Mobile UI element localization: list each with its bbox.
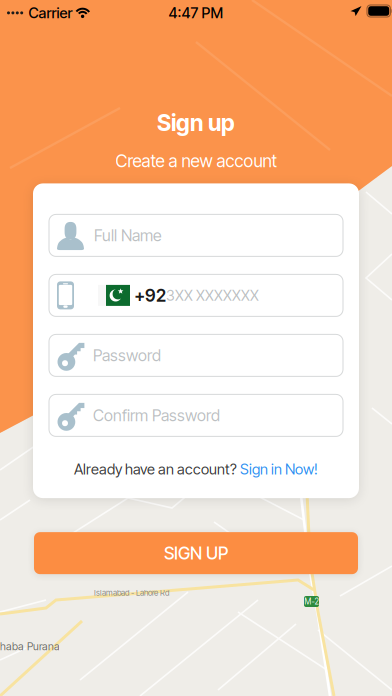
- staticText: 3XX XXXXXXX: [166, 286, 259, 304]
- staticText: Sign up: [157, 109, 235, 136]
- staticText: Create a new account: [115, 150, 276, 171]
- button[interactable]: Sign in Now!: [240, 460, 318, 478]
- staticText: Carrier: [29, 4, 73, 22]
- staticText: 4:47 PM: [168, 4, 223, 22]
- staticText: haba Purana: [0, 640, 60, 653]
- staticText: Confirm Password: [93, 406, 220, 425]
- staticText: Password: [93, 346, 161, 365]
- button[interactable]: Full Name: [49, 214, 343, 256]
- button[interactable]: Password: [49, 334, 343, 376]
- button[interactable]: Confirm Password: [49, 394, 343, 436]
- staticText: Already have an account?: [74, 460, 240, 478]
- staticText: SIGN UP: [164, 543, 228, 564]
- staticText: M-2: [304, 597, 318, 606]
- button[interactable]: SIGN UP: [34, 532, 358, 574]
- staticText: Sign in Now!: [240, 460, 318, 478]
- staticText: +92: [134, 285, 166, 306]
- staticText: Islamabad - Lahore Rd: [94, 588, 169, 598]
- button[interactable]: +92: [49, 274, 343, 316]
- staticText: Full Name: [94, 226, 162, 245]
